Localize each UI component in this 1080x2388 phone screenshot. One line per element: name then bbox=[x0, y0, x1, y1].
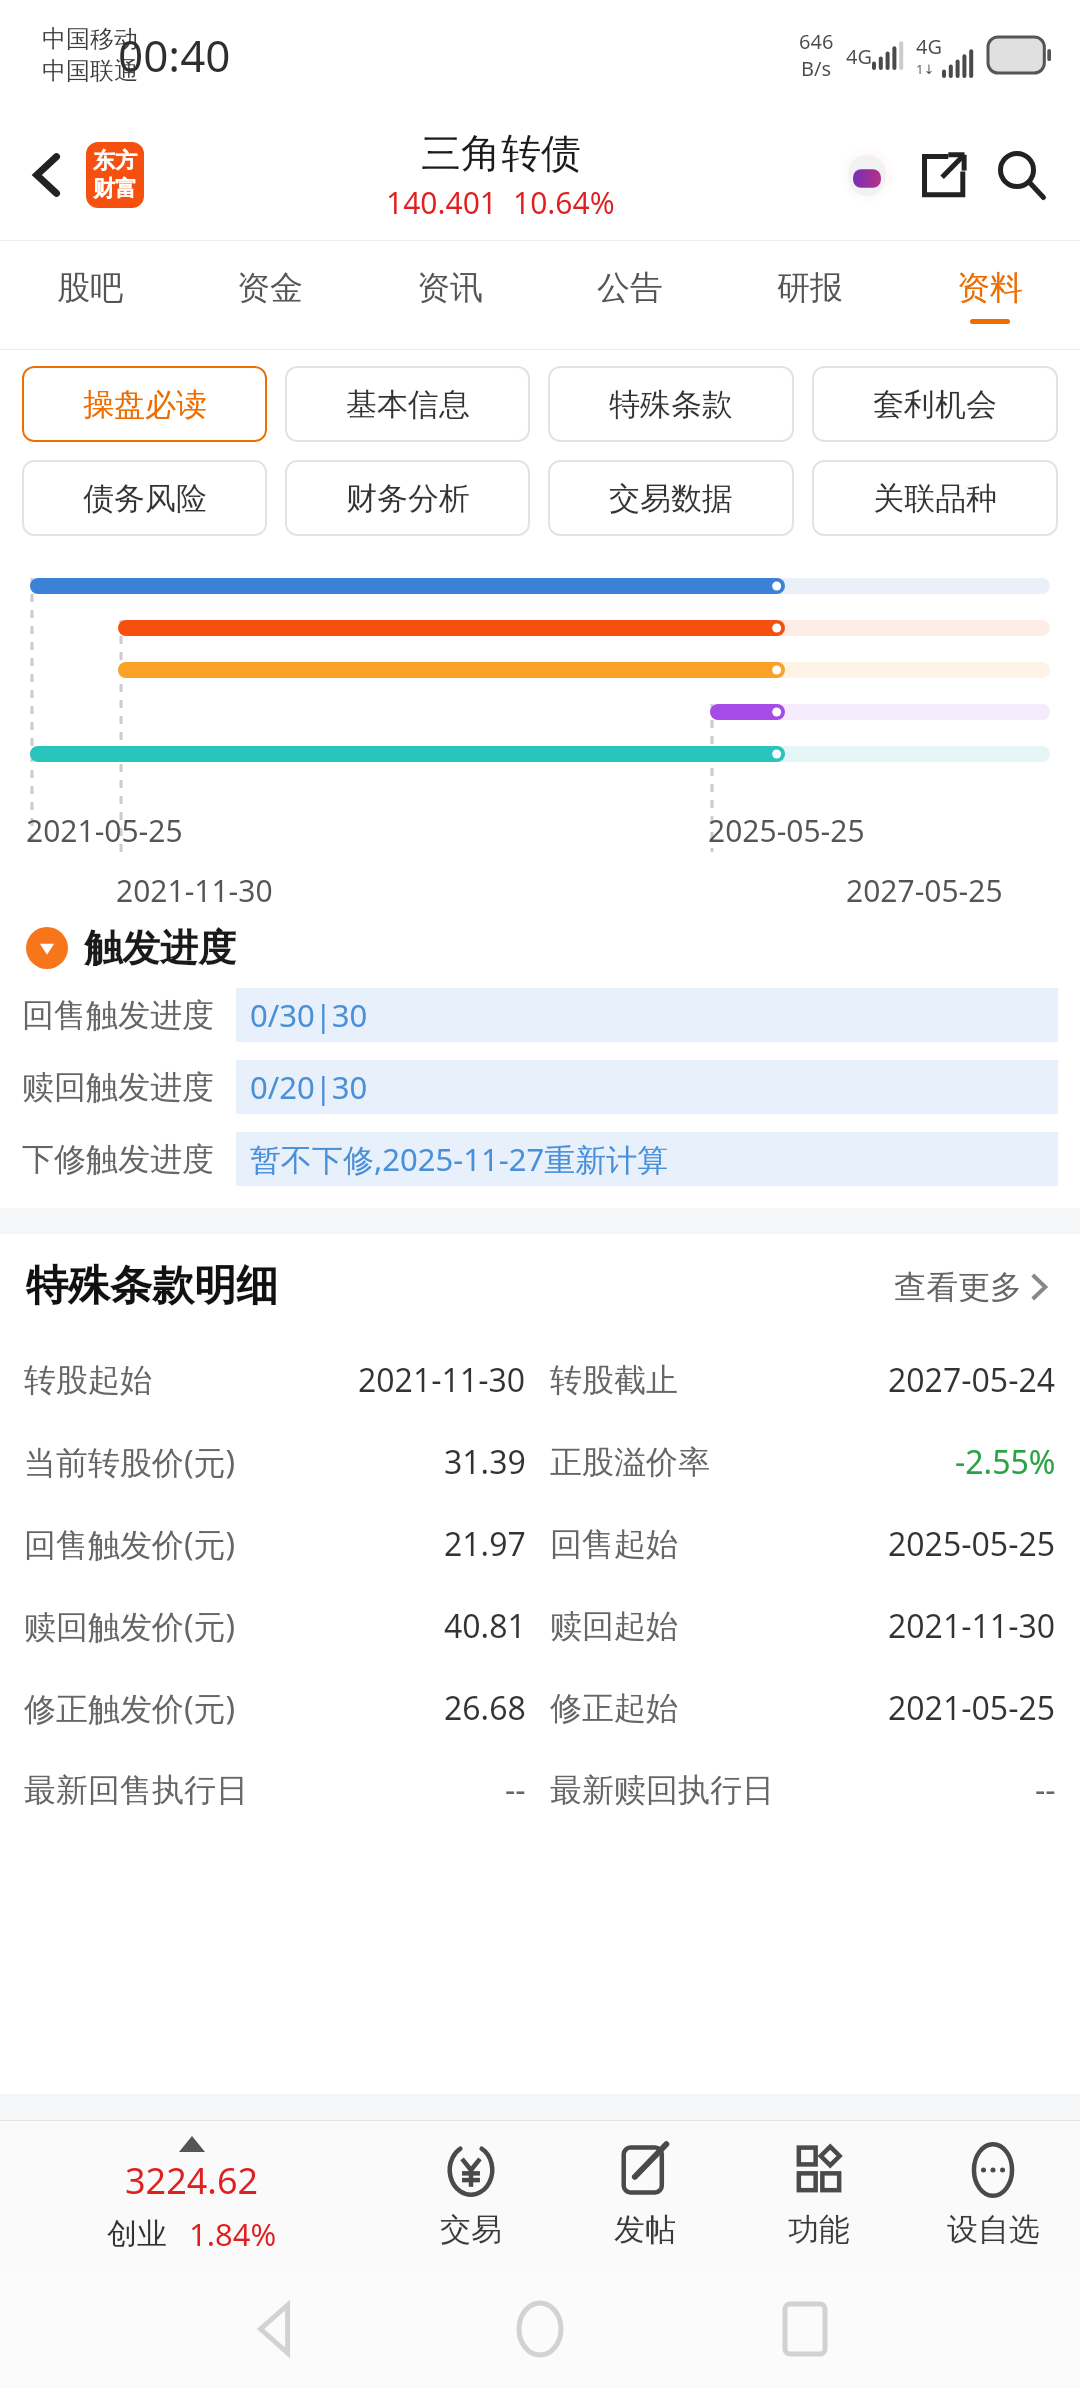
staticText: 2025-05-25 bbox=[888, 1522, 1056, 1566]
button[interactable]: 主页 bbox=[505, 2294, 575, 2364]
button[interactable]: 搜索 bbox=[988, 142, 1054, 208]
button[interactable]: 助手 bbox=[836, 144, 898, 206]
staticText: 140.401 bbox=[386, 182, 497, 223]
staticText: -- bbox=[505, 1768, 526, 1812]
staticText: 31.39 bbox=[444, 1440, 526, 1484]
button[interactable]: 研报 bbox=[720, 240, 900, 350]
staticText: 3224.62 bbox=[125, 2156, 259, 2205]
staticText: 发帖 bbox=[614, 2210, 676, 2249]
button[interactable]: 资讯 bbox=[360, 240, 540, 350]
staticText: 回售触发进度 bbox=[22, 995, 214, 1035]
staticText: 回售触发价(元) bbox=[24, 1522, 236, 1566]
staticText: 2021-11-30 bbox=[116, 870, 273, 911]
staticText: 特殊条款 bbox=[609, 385, 733, 424]
button[interactable]: 交易 bbox=[384, 2120, 558, 2270]
button[interactable]: 最近任务 bbox=[770, 2294, 840, 2364]
staticText: 0/20|30 bbox=[250, 1066, 368, 1108]
staticText: 26.68 bbox=[444, 1686, 526, 1730]
button[interactable]: 特殊条款 bbox=[548, 366, 794, 442]
staticText: 财务分析 bbox=[346, 479, 470, 518]
staticText: 特殊条款明细 bbox=[26, 1260, 278, 1313]
staticText: 2027-05-24 bbox=[888, 1358, 1056, 1402]
staticText: 公告 bbox=[597, 267, 663, 309]
button[interactable]: 资料 bbox=[900, 240, 1080, 350]
staticText: 触发进度 bbox=[84, 924, 236, 972]
staticText: 中国联通 bbox=[42, 56, 138, 86]
staticText: 21.97 bbox=[444, 1522, 526, 1566]
staticText: 回售起始 bbox=[550, 1524, 678, 1564]
button[interactable]: 操盘必读 bbox=[22, 366, 267, 442]
staticText: 债务风险 bbox=[83, 479, 207, 518]
button[interactable]: 3224.62 bbox=[0, 2120, 384, 2270]
button[interactable]: 套利机会 bbox=[812, 366, 1058, 442]
button[interactable]: 公告 bbox=[540, 240, 720, 350]
staticText: 646 bbox=[799, 28, 834, 55]
button[interactable]: 债务风险 bbox=[22, 460, 267, 536]
staticText: 2021-05-25 bbox=[888, 1686, 1056, 1730]
button[interactable]: 设自选 bbox=[906, 2120, 1080, 2270]
staticText: 2027-05-25 bbox=[846, 870, 1003, 911]
staticText: 修正触发价(元) bbox=[24, 1686, 236, 1730]
button[interactable]: 资金 bbox=[180, 240, 360, 350]
staticText: 赎回起始 bbox=[550, 1606, 678, 1646]
staticText: 资料 bbox=[957, 267, 1023, 309]
staticText: 4G bbox=[916, 33, 942, 60]
staticText: B/s bbox=[801, 55, 832, 82]
staticText: 当前转股价(元) bbox=[24, 1440, 236, 1484]
staticText: 40.81 bbox=[444, 1604, 526, 1648]
button[interactable]: 分享 bbox=[912, 144, 974, 206]
staticText: 2021-05-25 bbox=[26, 810, 183, 851]
staticText: 功能 bbox=[788, 2210, 850, 2249]
button[interactable]: 功能 bbox=[732, 2120, 906, 2270]
staticText: 创业 bbox=[107, 2215, 167, 2253]
staticText: 三角转债 bbox=[421, 128, 581, 178]
button[interactable]: 东方财富 bbox=[86, 142, 144, 208]
staticText: 交易 bbox=[440, 2210, 502, 2249]
staticText: 套利机会 bbox=[873, 385, 997, 424]
button[interactable]: 交易数据 bbox=[548, 460, 794, 536]
staticText: 交易数据 bbox=[609, 479, 733, 518]
staticText: 下修触发进度 bbox=[22, 1139, 214, 1179]
button[interactable]: 触发进度 bbox=[26, 924, 1080, 972]
staticText: 转股起始 bbox=[24, 1360, 152, 1400]
staticText: 资讯 bbox=[417, 267, 483, 309]
button[interactable]: 返回 bbox=[22, 144, 72, 206]
staticText: 设自选 bbox=[947, 2210, 1040, 2249]
staticText: 赎回触发价(元) bbox=[24, 1604, 236, 1648]
staticText: 操盘必读 bbox=[83, 385, 207, 424]
button[interactable]: 基本信息 bbox=[285, 366, 530, 442]
staticText: 中国移动 bbox=[42, 24, 138, 54]
button[interactable]: 关联品种 bbox=[812, 460, 1058, 536]
staticText: 基本信息 bbox=[346, 385, 470, 424]
button[interactable]: 股吧 bbox=[0, 240, 180, 350]
staticText: 转股截止 bbox=[550, 1360, 678, 1400]
staticText: 研报 bbox=[777, 267, 843, 309]
staticText: 1.84% bbox=[189, 2213, 277, 2255]
button[interactable]: 查看更多 bbox=[888, 1261, 1054, 1313]
button[interactable]: 返回 bbox=[240, 2294, 310, 2364]
staticText: 赎回触发进度 bbox=[22, 1067, 214, 1107]
staticText: 10.64% bbox=[513, 182, 615, 223]
staticText: 00:40 bbox=[118, 25, 231, 85]
staticText: 资金 bbox=[237, 267, 303, 309]
staticText: -2.55% bbox=[955, 1440, 1056, 1484]
staticText: 1↓ bbox=[916, 60, 935, 78]
staticText: 东方 bbox=[93, 147, 137, 175]
staticText: 股吧 bbox=[57, 267, 123, 309]
staticText: 查看更多 bbox=[894, 1267, 1022, 1307]
button[interactable]: 发帖 bbox=[558, 2120, 732, 2270]
staticText: 暂不下修,2025-11-27重新计算 bbox=[250, 1138, 669, 1180]
staticText: 0/30|30 bbox=[250, 994, 368, 1036]
staticText: 最新回售执行日 bbox=[24, 1770, 248, 1810]
staticText: -- bbox=[1035, 1768, 1056, 1812]
staticText: 2021-11-30 bbox=[888, 1604, 1056, 1648]
staticText: 修正起始 bbox=[550, 1688, 678, 1728]
staticText: 财富 bbox=[93, 175, 137, 203]
staticText: 最新赎回执行日 bbox=[550, 1770, 774, 1810]
staticText: 2021-11-30 bbox=[358, 1358, 526, 1402]
staticText: 2025-05-25 bbox=[708, 810, 865, 851]
staticText: 关联品种 bbox=[873, 479, 997, 518]
button[interactable]: 财务分析 bbox=[285, 460, 530, 536]
staticText: 4G bbox=[846, 43, 872, 70]
staticText: 正股溢价率 bbox=[550, 1442, 710, 1482]
